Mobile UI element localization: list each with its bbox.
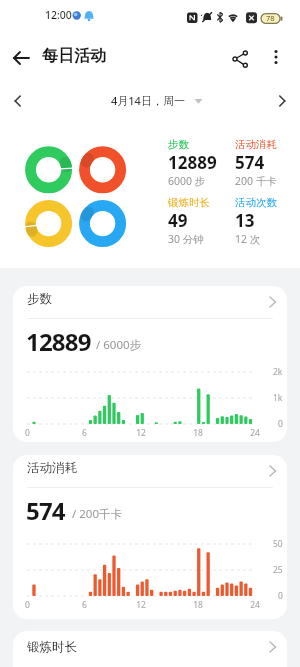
- button[interactable]: 锻炼时长: [13, 631, 287, 667]
- staticText: 6: [82, 427, 87, 439]
- staticText: 12889: [168, 151, 217, 174]
- button[interactable]: [8, 44, 36, 72]
- staticText: 24: [250, 427, 260, 439]
- staticText: 12 次: [235, 232, 261, 246]
- button[interactable]: [229, 44, 255, 70]
- staticText: 49: [168, 209, 188, 232]
- button[interactable]: [6, 89, 30, 113]
- staticText: 0: [25, 427, 30, 439]
- staticText: 活动次数: [235, 196, 277, 209]
- staticText: 574: [26, 494, 65, 527]
- staticText: 锻炼时长: [27, 639, 77, 655]
- staticText: 12: [136, 599, 146, 611]
- button[interactable]: [270, 89, 294, 113]
- staticText: 25: [273, 564, 283, 576]
- staticText: 1k: [273, 392, 283, 404]
- staticText: 12889: [26, 325, 91, 358]
- staticText: 2k: [273, 366, 283, 378]
- staticText: 步数: [27, 291, 52, 307]
- staticText: 18: [193, 599, 203, 611]
- staticText: 12: [136, 427, 146, 439]
- staticText: 6: [82, 599, 87, 611]
- button[interactable]: [264, 44, 288, 70]
- staticText: 18: [193, 427, 203, 439]
- staticText: 50: [273, 538, 283, 550]
- staticText: 活动消耗: [235, 138, 277, 151]
- staticText: 0: [278, 418, 283, 430]
- staticText: 步数: [168, 138, 189, 151]
- staticText: 6000 步: [168, 174, 206, 188]
- staticText: 0: [25, 599, 30, 611]
- staticText: 24: [250, 599, 260, 611]
- button[interactable]: 步数: [13, 286, 287, 442]
- staticText: 574: [235, 151, 265, 174]
- staticText: 13: [235, 209, 255, 232]
- staticText: 活动消耗: [27, 460, 77, 476]
- staticText: 锻炼时长: [168, 196, 210, 209]
- staticText: 4月14日，周一: [111, 93, 185, 108]
- staticText: 12:00: [45, 8, 72, 22]
- button[interactable]: 活动消耗: [13, 455, 287, 619]
- staticText: / 200千卡: [72, 506, 123, 522]
- staticText: 30 分钟: [168, 232, 204, 246]
- staticText: 0: [278, 590, 283, 602]
- staticText: / 6000步: [96, 337, 142, 353]
- staticText: 78: [266, 13, 275, 23]
- staticText: 200 千卡: [235, 174, 277, 188]
- staticText: 每日活动: [42, 46, 106, 66]
